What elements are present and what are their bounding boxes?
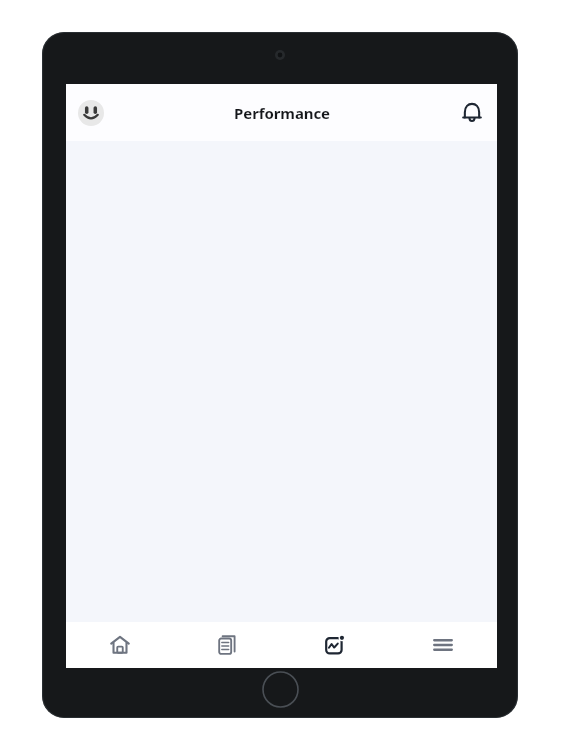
button[interactable]: Home	[66, 622, 173, 668]
button[interactable]: Profile	[71, 93, 111, 133]
button[interactable]: Performance	[281, 622, 389, 668]
button[interactable]: Menu	[389, 622, 497, 668]
button[interactable]: Notifications	[453, 94, 491, 132]
staticText: Performance	[234, 103, 330, 123]
button[interactable]: Documents	[173, 622, 281, 668]
